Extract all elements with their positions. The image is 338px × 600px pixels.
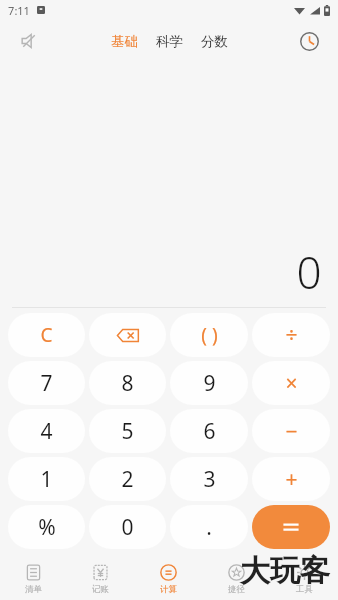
- button[interactable]: C: [8, 313, 85, 357]
- button[interactable]: Backspace: [89, 313, 166, 357]
- staticText: 6: [203, 417, 216, 446]
- staticText: 记账: [92, 584, 109, 595]
- button[interactable]: 6: [170, 409, 248, 453]
- staticText: 0: [296, 242, 322, 302]
- staticText: %: [38, 513, 56, 542]
- staticText: 7:11: [8, 3, 30, 18]
- staticText: 分数: [201, 33, 228, 50]
- staticText: 科学: [156, 33, 183, 50]
- button[interactable]: ( ): [170, 313, 248, 357]
- staticText: ( ): [201, 322, 218, 348]
- staticText: 5: [121, 417, 134, 446]
- staticText: 1: [40, 465, 53, 494]
- staticText: 7: [40, 369, 53, 398]
- button[interactable]: ÷: [252, 313, 330, 357]
- button[interactable]: History: [292, 24, 326, 58]
- button[interactable]: 9: [170, 361, 248, 405]
- staticText: .: [206, 513, 212, 542]
- staticText: 基础: [111, 33, 138, 50]
- staticText: ×: [285, 369, 298, 398]
- button[interactable]: −: [252, 409, 330, 453]
- staticText: 工具: [296, 584, 313, 595]
- button[interactable]: 清单: [0, 558, 67, 600]
- staticText: 9: [203, 369, 216, 398]
- staticText: +: [285, 465, 298, 494]
- staticText: 3: [203, 465, 216, 494]
- staticText: 捷径: [228, 584, 245, 595]
- button[interactable]: 3: [170, 457, 248, 501]
- button[interactable]: .: [170, 505, 248, 549]
- staticText: 计算: [160, 584, 177, 595]
- button[interactable]: 科学: [152, 29, 187, 54]
- button[interactable]: Mute sound: [12, 24, 46, 58]
- button[interactable]: 基础: [107, 29, 142, 54]
- button[interactable]: 5: [89, 409, 166, 453]
- button[interactable]: 4: [8, 409, 85, 453]
- staticText: 0: [121, 513, 134, 542]
- staticText: 8: [121, 369, 134, 398]
- button[interactable]: 记账: [67, 558, 134, 600]
- button[interactable]: 2: [89, 457, 166, 501]
- button[interactable]: +: [252, 457, 330, 501]
- button[interactable]: 1: [8, 457, 85, 501]
- button[interactable]: 计算: [134, 558, 202, 600]
- button[interactable]: 捷径: [202, 558, 270, 600]
- staticText: ÷: [285, 321, 298, 350]
- staticText: 4: [40, 417, 53, 446]
- button[interactable]: ×: [252, 361, 330, 405]
- staticText: −: [285, 417, 298, 446]
- button[interactable]: Equals: [252, 505, 330, 549]
- button[interactable]: 分数: [197, 29, 232, 54]
- button[interactable]: 7: [8, 361, 85, 405]
- button[interactable]: 工具: [270, 558, 338, 600]
- staticText: C: [40, 322, 53, 348]
- staticText: 2: [121, 465, 134, 494]
- button[interactable]: %: [8, 505, 85, 549]
- staticText: 大玩客: [240, 552, 330, 590]
- button[interactable]: 0: [89, 505, 166, 549]
- staticText: 清单: [25, 584, 42, 595]
- button[interactable]: 8: [89, 361, 166, 405]
